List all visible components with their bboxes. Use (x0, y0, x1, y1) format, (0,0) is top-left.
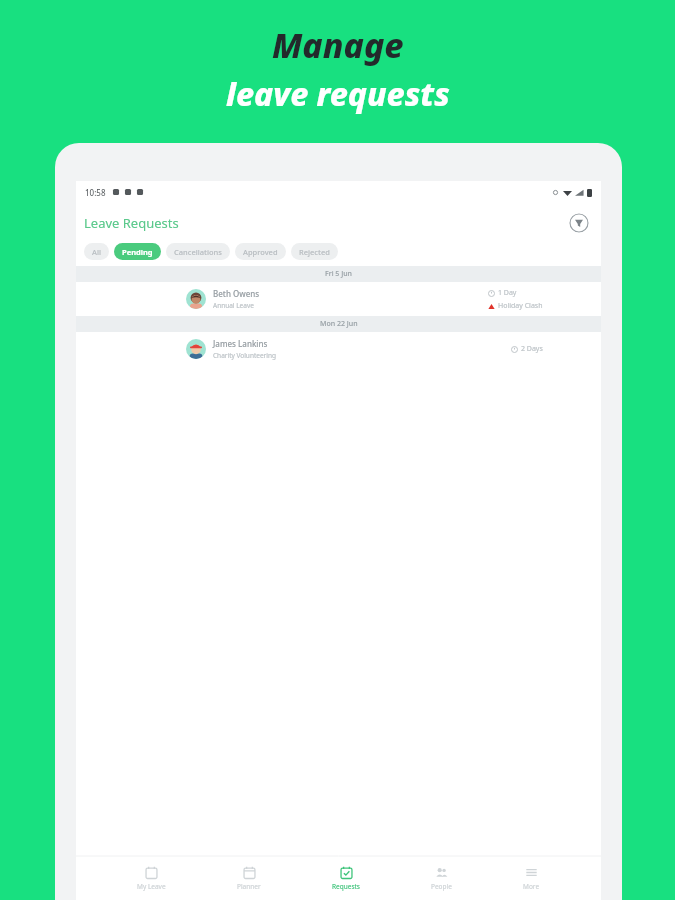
staticText: Rejected (299, 247, 330, 257)
staticText: Mon 22 Jun (320, 319, 358, 329)
staticText: People (431, 882, 452, 891)
button[interactable]: My Leave (127, 862, 176, 895)
staticText: Approved (243, 247, 278, 257)
staticText: Planner (237, 882, 261, 891)
button[interactable]: James Lankins (76, 332, 601, 366)
staticText: Cancellations (174, 247, 222, 257)
button[interactable]: Filter (569, 213, 589, 233)
staticText: Annual Leave (213, 301, 254, 310)
staticText: 1 Day (498, 288, 517, 298)
staticText: All (92, 247, 101, 257)
staticText: 2 Days (521, 344, 543, 354)
staticText: 10:58 (85, 187, 106, 198)
staticText: James Lankins (213, 338, 268, 349)
staticText: Charity Volunteering (213, 351, 276, 360)
staticText: More (523, 882, 540, 891)
staticText: Requests (332, 882, 360, 891)
staticText: Manage (272, 22, 404, 68)
staticText: Fri 5 Jun (325, 269, 352, 279)
button[interactable]: People (421, 862, 462, 895)
button[interactable]: Beth Owens (76, 282, 601, 316)
button[interactable]: Pending (114, 243, 161, 260)
button[interactable]: Planner (227, 862, 271, 895)
staticText: Pending (122, 247, 153, 257)
staticText: Holiday Clash (498, 301, 543, 311)
staticText: Leave Requests (84, 214, 179, 232)
button[interactable]: All (84, 243, 109, 260)
staticText: leave requests (226, 72, 450, 116)
button[interactable]: More (513, 862, 550, 895)
button[interactable]: Rejected (291, 243, 338, 260)
button[interactable]: Cancellations (166, 243, 230, 260)
staticText: Beth Owens (213, 288, 260, 299)
button[interactable]: Requests (322, 862, 370, 895)
button[interactable]: Approved (235, 243, 286, 260)
staticText: My Leave (137, 882, 166, 891)
